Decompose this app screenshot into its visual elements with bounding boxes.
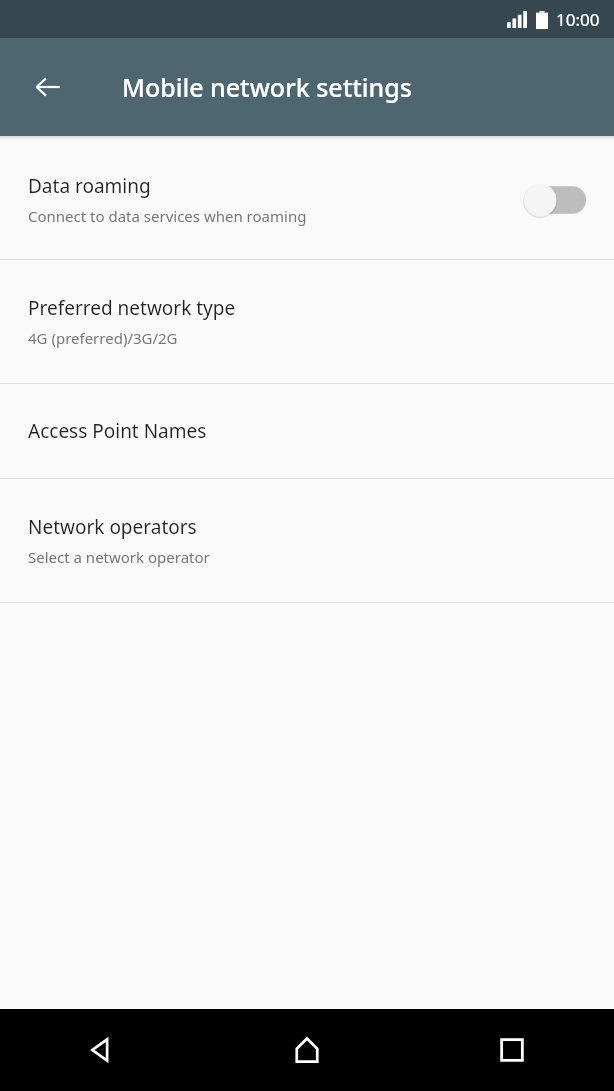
staticText: Connect to data services when roaming [28, 206, 307, 226]
button[interactable]: Network operators [0, 479, 614, 602]
staticText: Preferred network type [28, 295, 236, 321]
staticText: Mobile network settings [122, 70, 412, 104]
staticText: Network operators [28, 514, 197, 540]
staticText: Select a network operator [28, 547, 210, 567]
button[interactable]: Access Point Names [0, 384, 614, 478]
button[interactable]: Back [0, 1009, 204, 1091]
staticText: Data roaming [28, 173, 151, 199]
staticText: Access Point Names [28, 418, 207, 444]
other: Data roaming toggle [518, 178, 592, 222]
button[interactable]: Data roaming [0, 140, 614, 259]
button[interactable]: Recent apps [409, 1009, 614, 1091]
button[interactable]: Home [204, 1009, 409, 1091]
staticText: 10:00 [556, 8, 600, 31]
staticText: 4G (preferred)/3G/2G [28, 328, 178, 348]
button[interactable]: Preferred network type [0, 260, 614, 383]
button[interactable]: Back [16, 55, 80, 119]
